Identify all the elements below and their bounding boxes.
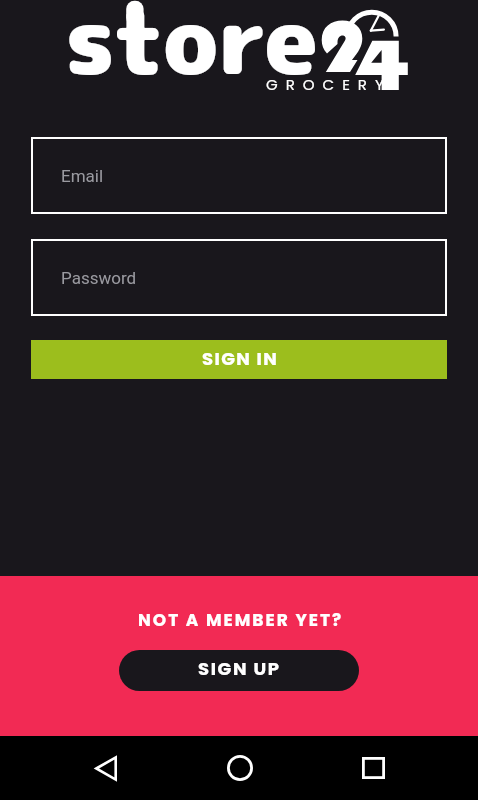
- staticText: Password: [61, 268, 137, 288]
- button[interactable]: SIGN UP: [119, 650, 359, 691]
- staticText: NOT A MEMBER YET?: [138, 608, 344, 632]
- staticText: SIGN UP: [198, 656, 281, 681]
- staticText: Email: [61, 166, 104, 186]
- button[interactable]: Back: [73, 736, 138, 800]
- button[interactable]: Home: [207, 736, 272, 800]
- button[interactable]: Password: [31, 239, 447, 316]
- staticText: SIGN IN: [202, 346, 279, 371]
- staticText: GROCERY: [266, 74, 392, 95]
- button[interactable]: SIGN IN: [31, 340, 447, 379]
- button[interactable]: Email: [31, 137, 447, 214]
- staticText: store: [65, 0, 319, 103]
- button[interactable]: Recents: [341, 736, 406, 800]
